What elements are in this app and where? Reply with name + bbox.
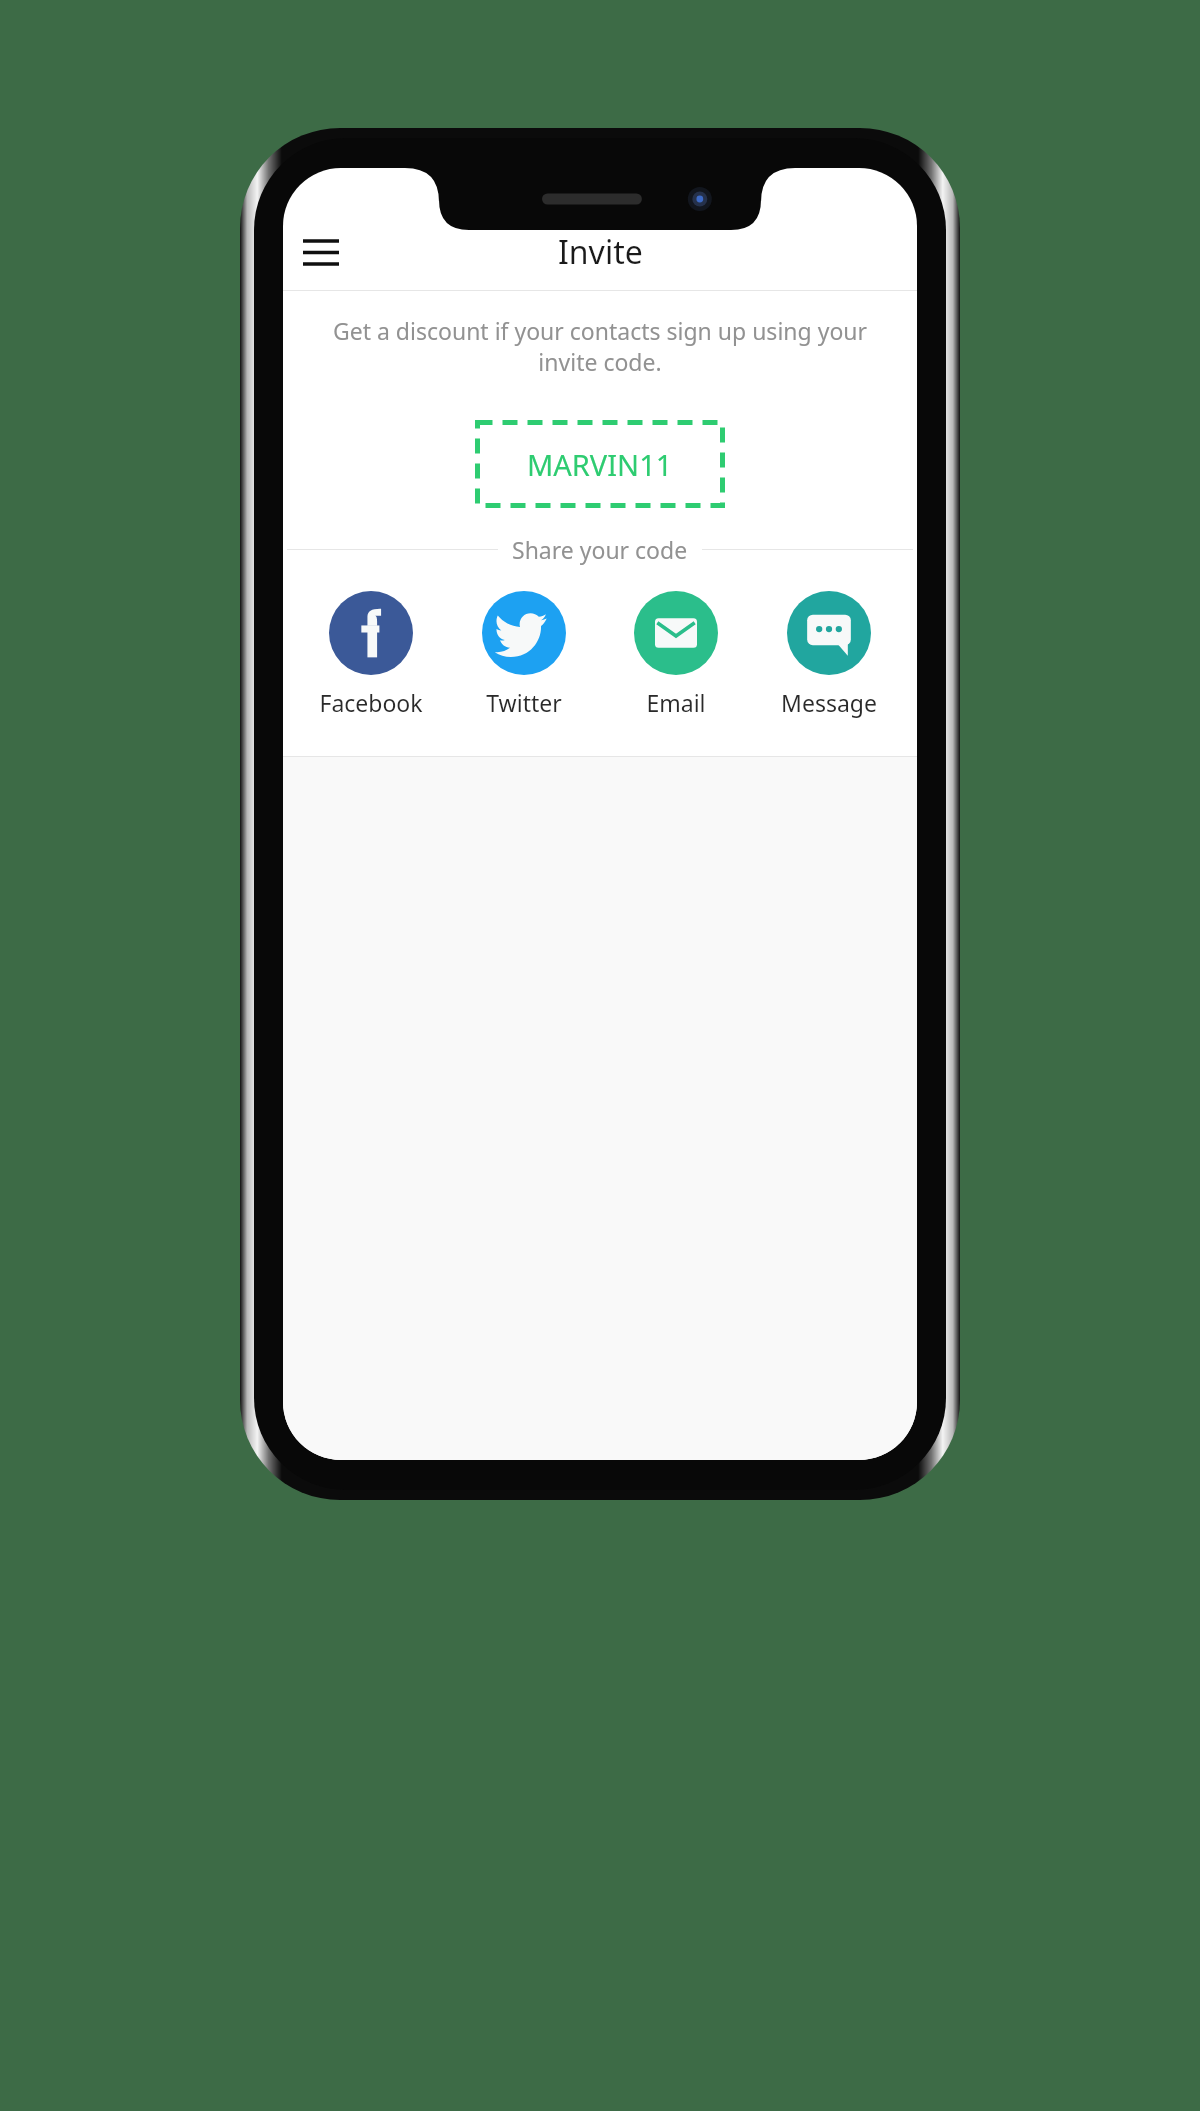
staticText: Twitter [486,687,562,718]
staticText: MARVIN11 [527,445,673,484]
staticText: Invite [558,230,643,274]
staticText: Share your code [512,534,688,565]
staticText: Facebook [319,687,423,718]
staticText: Message [781,687,877,718]
button[interactable]: MARVIN11 [475,420,725,508]
button[interactable]: Twitter [454,591,594,718]
staticText: Email [646,687,706,718]
button[interactable]: Open navigation menu [289,220,353,284]
staticText: Get a discount if your contacts sign up … [319,315,881,378]
button[interactable]: Email [606,591,746,718]
button[interactable]: Facebook [301,591,441,718]
button[interactable]: Message [759,591,899,718]
